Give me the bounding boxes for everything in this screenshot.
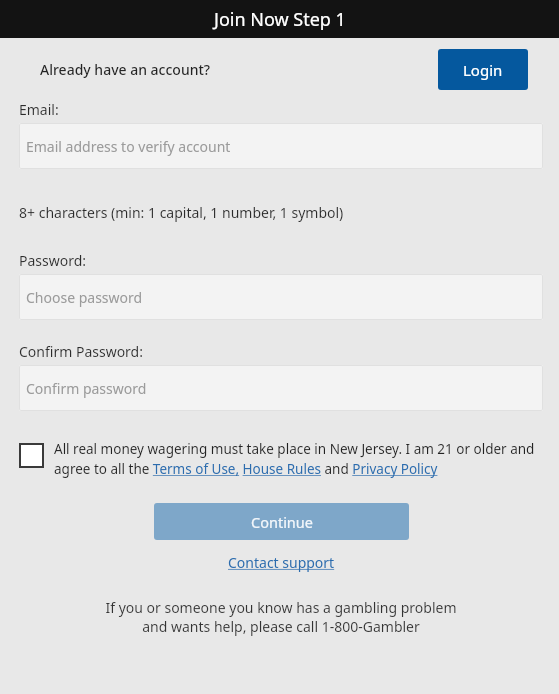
button[interactable]: Continue [154,503,409,540]
staticText: Contact support [228,553,335,572]
other: Accept terms checkbox [19,443,44,468]
staticText: Choose password [26,288,143,307]
staticText: Already have an account? [40,60,211,79]
staticText: All real money wagering must take place … [54,440,543,478]
staticText: Email: [19,100,59,119]
staticText: Password: [19,251,87,270]
button[interactable]: Contact support [228,553,335,572]
button[interactable]: Email address to verify account [19,123,543,169]
staticText: Confirm Password: [19,342,143,361]
staticText: Continue [251,512,313,532]
button[interactable]: Accept terms checkbox [19,440,543,478]
staticText: Confirm password [26,379,147,398]
staticText: Join Now Step 1 [214,7,346,32]
staticText: 8+ characters (min: 1 capital, 1 number,… [19,203,344,222]
staticText: Email address to verify account [26,137,231,156]
staticText: Login [463,60,503,80]
button[interactable]: Login [438,49,528,90]
button[interactable]: Choose password [19,274,543,320]
staticText: If you or someone you know has a gamblin… [19,598,543,636]
button[interactable]: Confirm password [19,365,543,411]
